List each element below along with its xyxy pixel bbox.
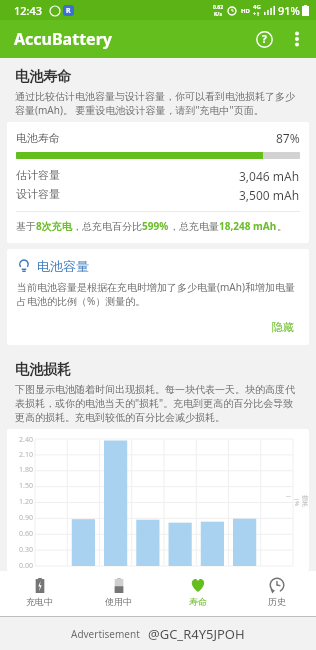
staticText: AccuBattery — [14, 28, 112, 50]
staticText: 电池寿命 — [15, 68, 71, 86]
staticText: 基于 — [16, 220, 36, 233]
staticText: 599% — [142, 219, 169, 233]
staticText: +↑ — [253, 11, 261, 18]
button[interactable]: 历史 — [237, 571, 316, 616]
staticText: 充电中 — [26, 596, 53, 607]
staticText: 使用中 — [105, 596, 132, 607]
staticText: 91% — [278, 3, 300, 18]
button[interactable]: 使用中 — [79, 571, 158, 616]
button[interactable]: 充电中 — [0, 571, 79, 616]
staticText: 寿命 — [189, 596, 207, 607]
button[interactable]: Help — [247, 22, 281, 56]
staticText: R — [66, 6, 71, 16]
button[interactable]: 寿命 — [158, 571, 237, 616]
staticText: 历史 — [268, 596, 286, 607]
staticText: 2.40 — [19, 435, 33, 445]
staticText: 0.30 — [19, 545, 33, 555]
staticText: 8次充电 — [36, 219, 72, 233]
staticText: 估计容量 — [16, 168, 60, 182]
staticText: Advertisement — [71, 627, 140, 641]
staticText: ，总充电百分比 — [72, 220, 142, 233]
staticText: @GC_R4Y5JPOH — [148, 625, 245, 643]
staticText: 87% — [276, 130, 300, 146]
staticText: 电池寿命 — [16, 131, 60, 145]
staticText: 电池损耗 — [15, 361, 71, 379]
button[interactable]: More options — [281, 23, 313, 55]
staticText: 0.00 — [19, 561, 33, 571]
button[interactable]: 隐藏 — [267, 318, 299, 336]
staticText: 设计容量 — [16, 187, 60, 201]
staticText: 当前电池容量是根据在充电时增加了多少电量(mAh)和增加电量占电池的比例（%）测… — [17, 280, 299, 308]
staticText: 电池损耗（%） — [285, 495, 309, 511]
staticText: 1.80 — [19, 465, 33, 475]
staticText: 1.20 — [19, 497, 33, 507]
staticText: 隐藏 — [272, 320, 294, 334]
staticText: 3,046 mAh — [239, 168, 300, 184]
staticText: 4G — [253, 3, 261, 11]
staticText: 0.62 — [213, 4, 223, 11]
staticText: ? — [262, 32, 267, 46]
staticText: 3,500 mAh — [239, 187, 300, 203]
staticText: ，总充电量 — [169, 220, 219, 233]
staticText: 1.50 — [19, 481, 33, 491]
staticText: 0.60 — [19, 529, 33, 539]
staticText: 。 — [277, 220, 287, 233]
staticText: 通过比较估计电池容量与设计容量，你可以看到电池损耗了多少容量(mAh)。 要重设… — [15, 90, 302, 117]
staticText: 2.10 — [19, 450, 33, 460]
staticText: 下图显示电池随着时间出现损耗。每一块代表一天。块的高度代表损耗，或你的电池当天的… — [15, 383, 302, 424]
staticText: K/s — [214, 11, 222, 18]
staticText: 12:43 — [14, 3, 43, 18]
staticText: 0.90 — [19, 513, 33, 523]
staticText: 18,248 mAh — [219, 219, 277, 233]
button[interactable]: 电池寿命 — [7, 122, 309, 243]
staticText: HD — [241, 7, 250, 15]
staticText: 电池容量 — [37, 258, 89, 274]
